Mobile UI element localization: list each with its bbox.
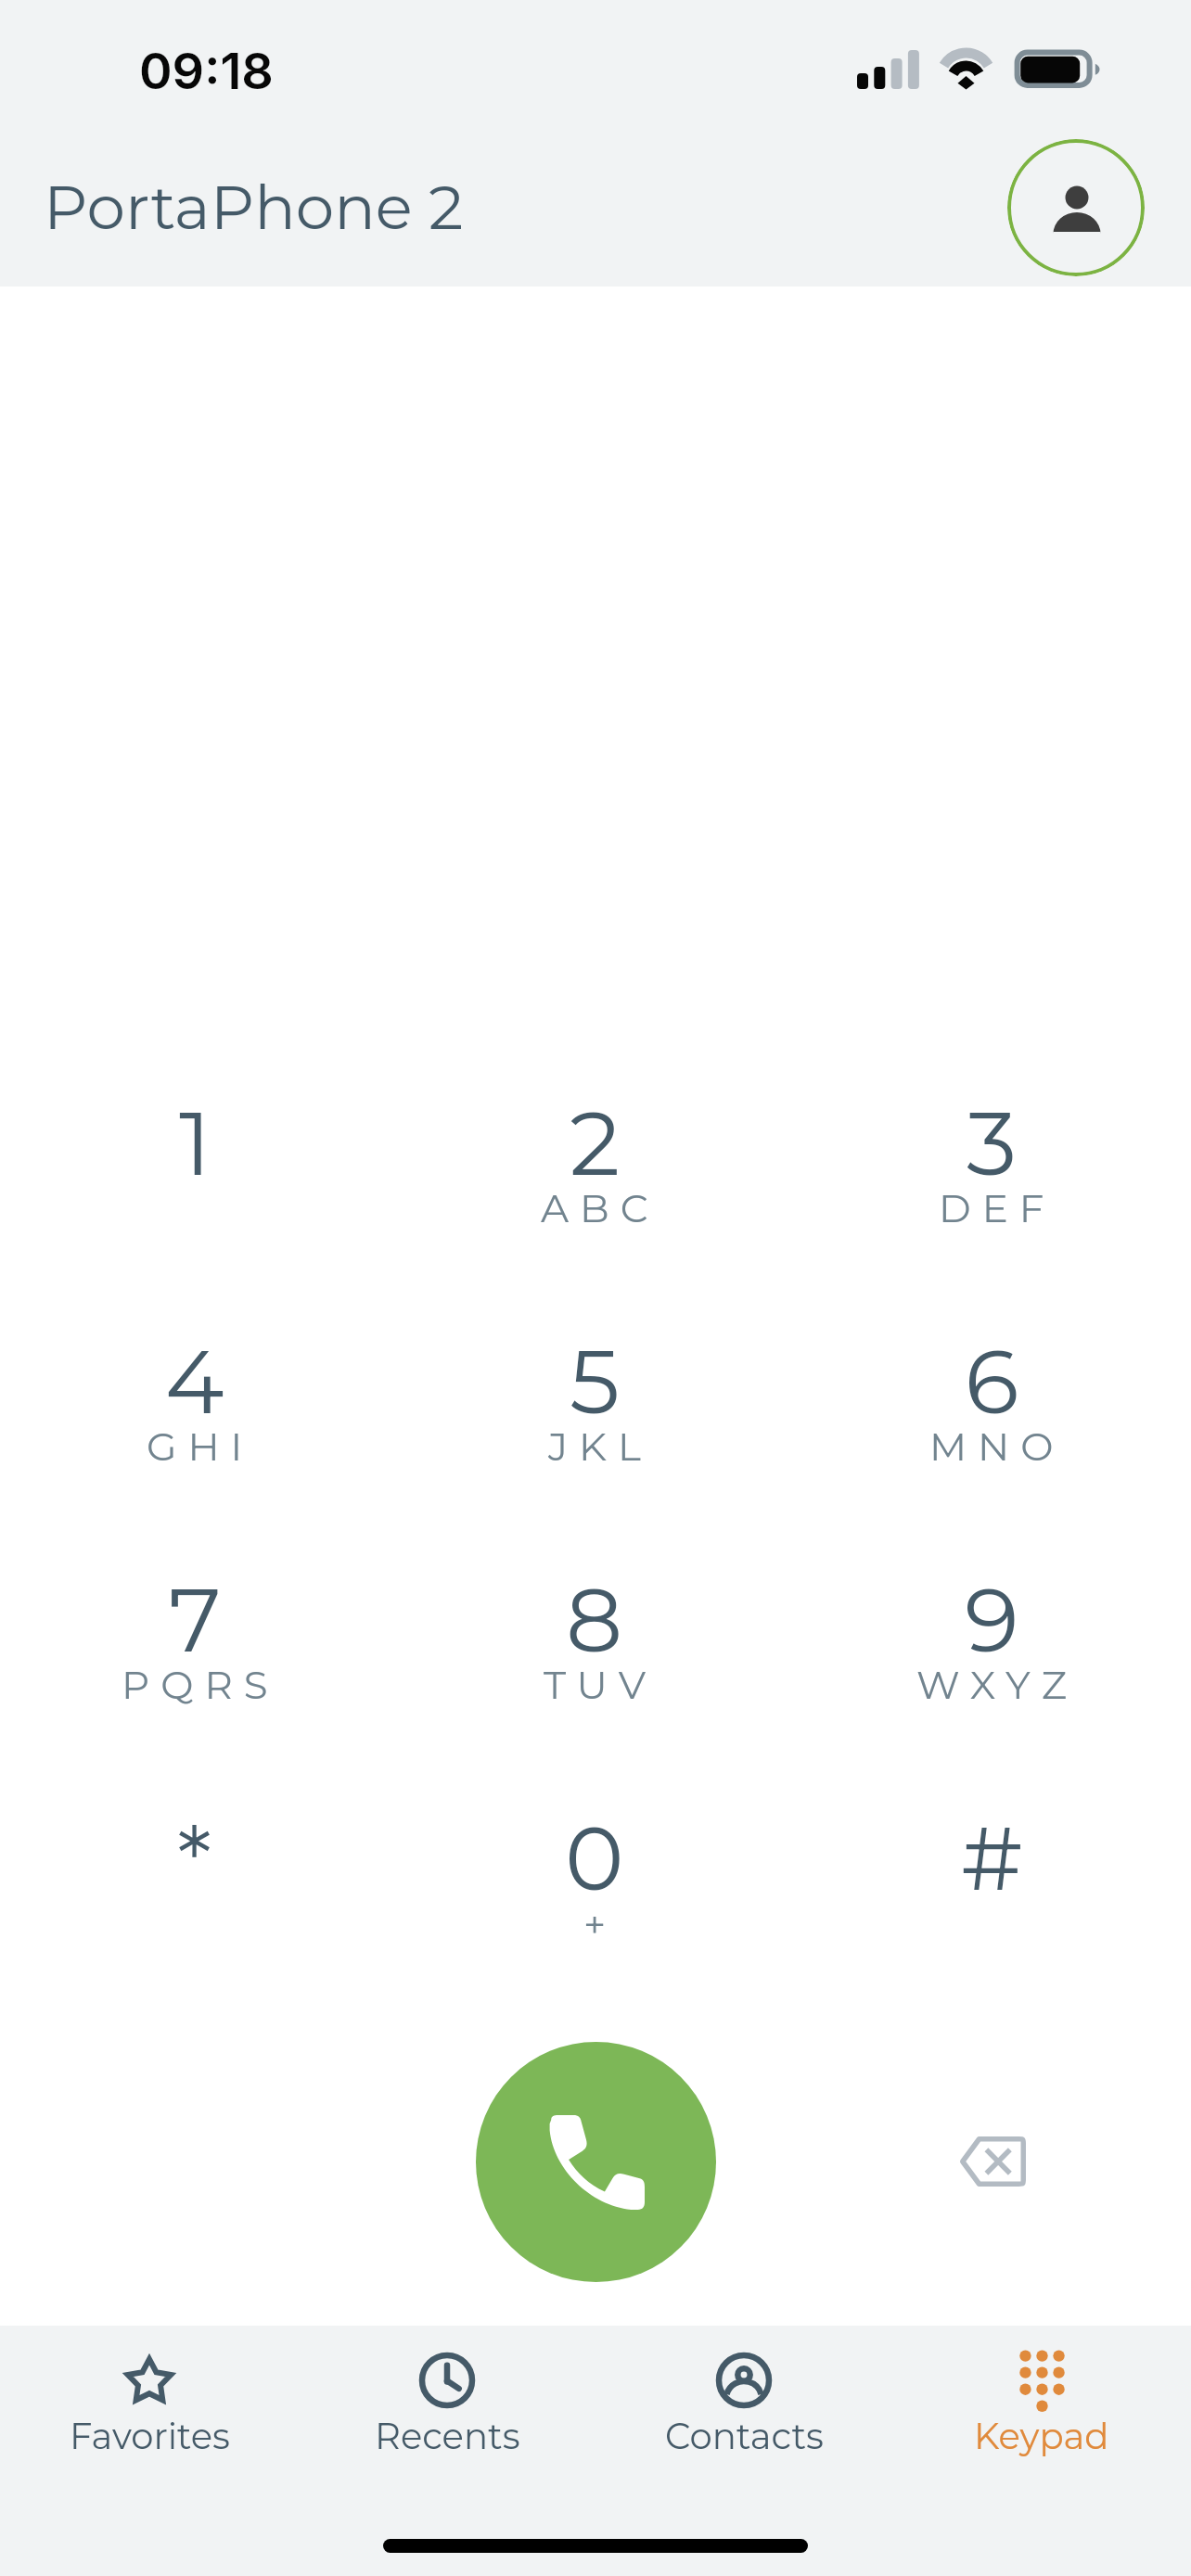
button[interactable] <box>446 1536 743 1758</box>
staticText: WXYZ <box>916 1661 1079 1708</box>
staticText: 8 <box>566 1565 623 1674</box>
staticText: Keypad <box>974 2415 1109 2458</box>
button[interactable] <box>299 2337 595 2476</box>
button[interactable] <box>843 1297 1140 1520</box>
staticText: + <box>583 1900 607 1947</box>
button[interactable]: Call <box>476 2042 716 2282</box>
staticText: Recents <box>375 2415 520 2458</box>
staticText: GHI <box>147 1422 254 1470</box>
button[interactable] <box>595 2337 892 2476</box>
staticText: PortaPhone 2 <box>44 170 464 244</box>
staticText: 9 <box>965 1565 1019 1674</box>
button[interactable] <box>46 1536 343 1758</box>
staticText: 6 <box>965 1327 1019 1435</box>
staticText: ABC <box>541 1184 660 1231</box>
staticText: TUV <box>544 1661 658 1708</box>
staticText: 2 <box>570 1089 621 1197</box>
button[interactable]: Account <box>1007 139 1145 276</box>
button[interactable] <box>46 1059 343 1282</box>
button[interactable] <box>843 1059 1140 1282</box>
staticText: 5 <box>570 1327 621 1435</box>
staticText: JKL <box>548 1422 652 1470</box>
staticText: 0 <box>565 1804 624 1912</box>
staticText: 09:18 <box>139 41 274 101</box>
staticText: MNO <box>929 1422 1065 1470</box>
button[interactable] <box>46 1774 343 1996</box>
staticText: 3 <box>967 1089 1018 1197</box>
button[interactable]: Delete <box>928 2101 1057 2222</box>
button[interactable] <box>46 1297 343 1520</box>
staticText: Contacts <box>665 2415 824 2458</box>
staticText: PQRS <box>122 1661 279 1708</box>
button[interactable] <box>446 1059 743 1282</box>
staticText: DEF <box>939 1184 1056 1231</box>
button[interactable] <box>843 1774 1140 1996</box>
button[interactable] <box>843 1536 1140 1758</box>
staticText: 4 <box>165 1327 224 1435</box>
button[interactable] <box>446 1297 743 1520</box>
button[interactable] <box>893 2337 1190 2476</box>
staticText: * <box>177 1804 212 1913</box>
staticText: 1 <box>179 1089 211 1197</box>
button[interactable] <box>1 2337 298 2476</box>
button[interactable] <box>446 1774 743 1996</box>
staticText: Favorites <box>70 2415 230 2458</box>
staticText: # <box>961 1804 1023 1912</box>
staticText: 7 <box>169 1565 222 1674</box>
